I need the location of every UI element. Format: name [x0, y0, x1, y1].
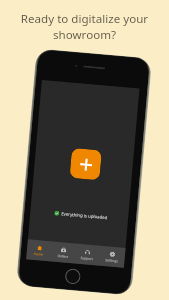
staticText: Home	[34, 251, 44, 256]
staticText: Settings	[105, 257, 119, 262]
button[interactable]: Settings	[99, 246, 125, 268]
button[interactable]: Orders	[50, 241, 76, 263]
staticText: Everything is uploaded	[61, 210, 108, 220]
button[interactable]: Home	[26, 239, 52, 261]
staticText: Support	[80, 255, 94, 260]
button[interactable]: Add item	[69, 148, 102, 180]
button[interactable]: Home button	[64, 268, 81, 285]
button[interactable]: Support	[74, 244, 101, 266]
staticText: Ready to digitalize your showroom?	[10, 11, 159, 42]
staticText: Orders	[57, 253, 69, 258]
